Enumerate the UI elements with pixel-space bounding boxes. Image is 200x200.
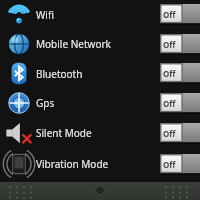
staticText: Vibration Mode: [36, 157, 160, 171]
staticText: Off: [163, 98, 176, 109]
button[interactable]: Mobile Network: [0, 29, 200, 59]
staticText: Off: [163, 68, 176, 79]
button[interactable]: Toggle off: [160, 154, 200, 175]
staticText: Off: [163, 128, 176, 139]
staticText: Off: [163, 39, 176, 50]
staticText: Off: [163, 9, 176, 20]
staticText: Mobile Network: [36, 37, 160, 51]
button[interactable]: Silent Mode: [0, 118, 200, 148]
staticText: Gps: [36, 96, 160, 110]
button[interactable]: Toggle off: [160, 93, 200, 114]
staticText: Off: [163, 159, 176, 170]
button[interactable]: Toggle off: [160, 123, 200, 144]
button[interactable]: Toggle off: [160, 63, 200, 84]
button[interactable]: Vibration Mode: [0, 148, 200, 180]
button[interactable]: Bluetooth: [0, 59, 200, 88]
staticText: Wifi: [36, 8, 160, 22]
button[interactable]: Toggle off: [160, 34, 200, 55]
button[interactable]: Toggle off: [160, 4, 200, 25]
staticText: Silent Mode: [36, 126, 160, 140]
button[interactable]: Gps: [0, 88, 200, 118]
staticText: Bluetooth: [36, 67, 160, 81]
button[interactable]: Wifi: [0, 0, 200, 29]
